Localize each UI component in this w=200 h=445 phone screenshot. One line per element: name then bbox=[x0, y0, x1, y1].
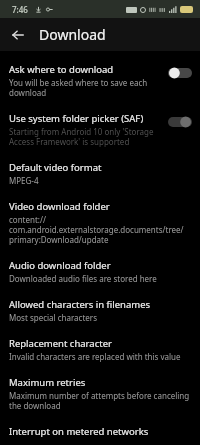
staticText: MPEG-4 bbox=[9, 175, 39, 186]
staticText: Use system folder picker (SAF) bbox=[9, 112, 144, 125]
button[interactable]: Replacement character bbox=[0, 330, 200, 369]
button[interactable]: Interrupt on metered networks bbox=[0, 418, 200, 445]
staticText: Replacement character bbox=[9, 337, 112, 350]
staticText: Allowed characters in filenames bbox=[9, 298, 151, 311]
staticText: Interrupt on metered networks bbox=[9, 425, 149, 438]
button[interactable]: Audio download folder bbox=[0, 252, 200, 291]
button[interactable]: Use system folder picker (SAF) bbox=[0, 105, 200, 154]
staticText: Ask where to download bbox=[9, 63, 114, 76]
button[interactable]: Back bbox=[5, 22, 31, 48]
staticText: You will be asked where to save each dow… bbox=[9, 77, 162, 98]
button[interactable]: Video download folder bbox=[0, 193, 200, 252]
staticText: Maximum number of attempts before cancel… bbox=[9, 390, 190, 411]
button[interactable]: Allowed characters in filenames bbox=[0, 291, 200, 330]
staticText: Video download folder bbox=[9, 200, 110, 213]
staticText: Starting from Android 10 only 'Storage A… bbox=[9, 126, 162, 147]
staticText: Most special characters bbox=[9, 312, 97, 323]
staticText: Invalid characters are replaced with thi… bbox=[9, 351, 181, 362]
button[interactable]: Default video format bbox=[0, 154, 200, 193]
staticText: Downloaded audio files are stored here bbox=[9, 273, 157, 284]
button[interactable]: Ask where to download bbox=[0, 56, 200, 105]
staticText: content://com.android.externalstorage.do… bbox=[9, 214, 190, 245]
staticText: Default video format bbox=[9, 161, 102, 174]
staticText: Audio download folder bbox=[9, 259, 111, 272]
staticText: Download bbox=[39, 25, 106, 44]
staticText: 7:46 bbox=[12, 4, 28, 15]
button[interactable]: Maximum retries bbox=[0, 369, 200, 418]
staticText: Maximum retries bbox=[9, 376, 86, 389]
